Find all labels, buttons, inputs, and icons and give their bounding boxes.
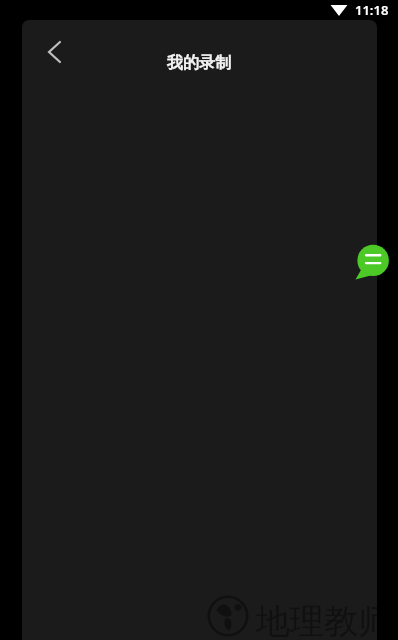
button[interactable]: Back — [30, 28, 78, 76]
button[interactable]: Feedback — [355, 243, 392, 280]
staticText: 地理教师 — [256, 600, 377, 640]
staticText: 11:18 — [355, 1, 389, 19]
staticText: 我的录制 — [167, 53, 231, 73]
